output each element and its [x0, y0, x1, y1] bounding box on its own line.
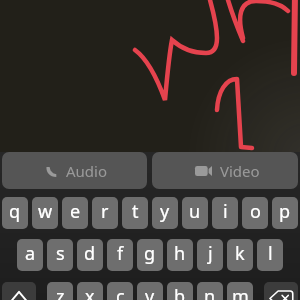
- button[interactable]: x: [77, 282, 103, 300]
- staticText: d: [84, 241, 96, 266]
- button[interactable]: q: [2, 197, 28, 229]
- button[interactable]: n: [197, 282, 223, 300]
- staticText: s: [56, 241, 65, 266]
- button[interactable]: l: [257, 239, 283, 271]
- button[interactable]: b: [167, 282, 193, 300]
- staticText: j: [208, 241, 213, 266]
- button[interactable]: a: [17, 239, 43, 271]
- staticText: l: [268, 241, 273, 266]
- staticText: w: [38, 199, 53, 224]
- staticText: b: [174, 284, 186, 300]
- button[interactable]: g: [137, 239, 163, 271]
- staticText: y: [160, 199, 170, 224]
- button[interactable]: m: [227, 282, 253, 300]
- button[interactable]: r: [92, 197, 118, 229]
- staticText: z: [56, 284, 65, 300]
- button[interactable]: f: [107, 239, 133, 271]
- button[interactable]: t: [122, 197, 148, 229]
- staticText: x: [85, 284, 95, 300]
- button[interactable]: v: [137, 282, 163, 300]
- staticText: k: [235, 241, 245, 266]
- staticText: n: [204, 284, 216, 300]
- button[interactable]: p: [272, 197, 298, 229]
- button[interactable]: e: [62, 197, 88, 229]
- button[interactable]: i: [212, 197, 238, 229]
- button[interactable]: Video: [152, 152, 298, 189]
- staticText: o: [250, 199, 261, 224]
- staticText: c: [116, 284, 125, 300]
- button[interactable]: s: [47, 239, 73, 271]
- button[interactable]: o: [242, 197, 268, 229]
- staticText: Video: [220, 161, 260, 181]
- staticText: q: [9, 199, 21, 224]
- staticText: v: [145, 284, 155, 300]
- button[interactable]: z: [47, 282, 73, 300]
- button[interactable]: y: [152, 197, 178, 229]
- button[interactable]: c: [107, 282, 133, 300]
- button[interactable]: d: [77, 239, 103, 271]
- button[interactable]: Audio: [2, 152, 147, 189]
- button[interactable]: Shift: [2, 282, 36, 300]
- staticText: r: [101, 199, 109, 224]
- button[interactable]: u: [182, 197, 208, 229]
- staticText: Audio: [66, 161, 108, 181]
- staticText: u: [189, 199, 201, 224]
- staticText: p: [279, 199, 291, 224]
- button[interactable]: Backspace: [264, 282, 298, 300]
- button[interactable]: j: [197, 239, 223, 271]
- staticText: a: [25, 241, 36, 266]
- staticText: h: [174, 241, 186, 266]
- button[interactable]: k: [227, 239, 253, 271]
- staticText: e: [70, 199, 81, 224]
- button[interactable]: h: [167, 239, 193, 271]
- staticText: m: [232, 284, 249, 300]
- staticText: f: [117, 241, 124, 266]
- staticText: t: [132, 199, 139, 224]
- staticText: g: [144, 241, 156, 266]
- button[interactable]: w: [32, 197, 58, 229]
- staticText: i: [223, 199, 228, 224]
